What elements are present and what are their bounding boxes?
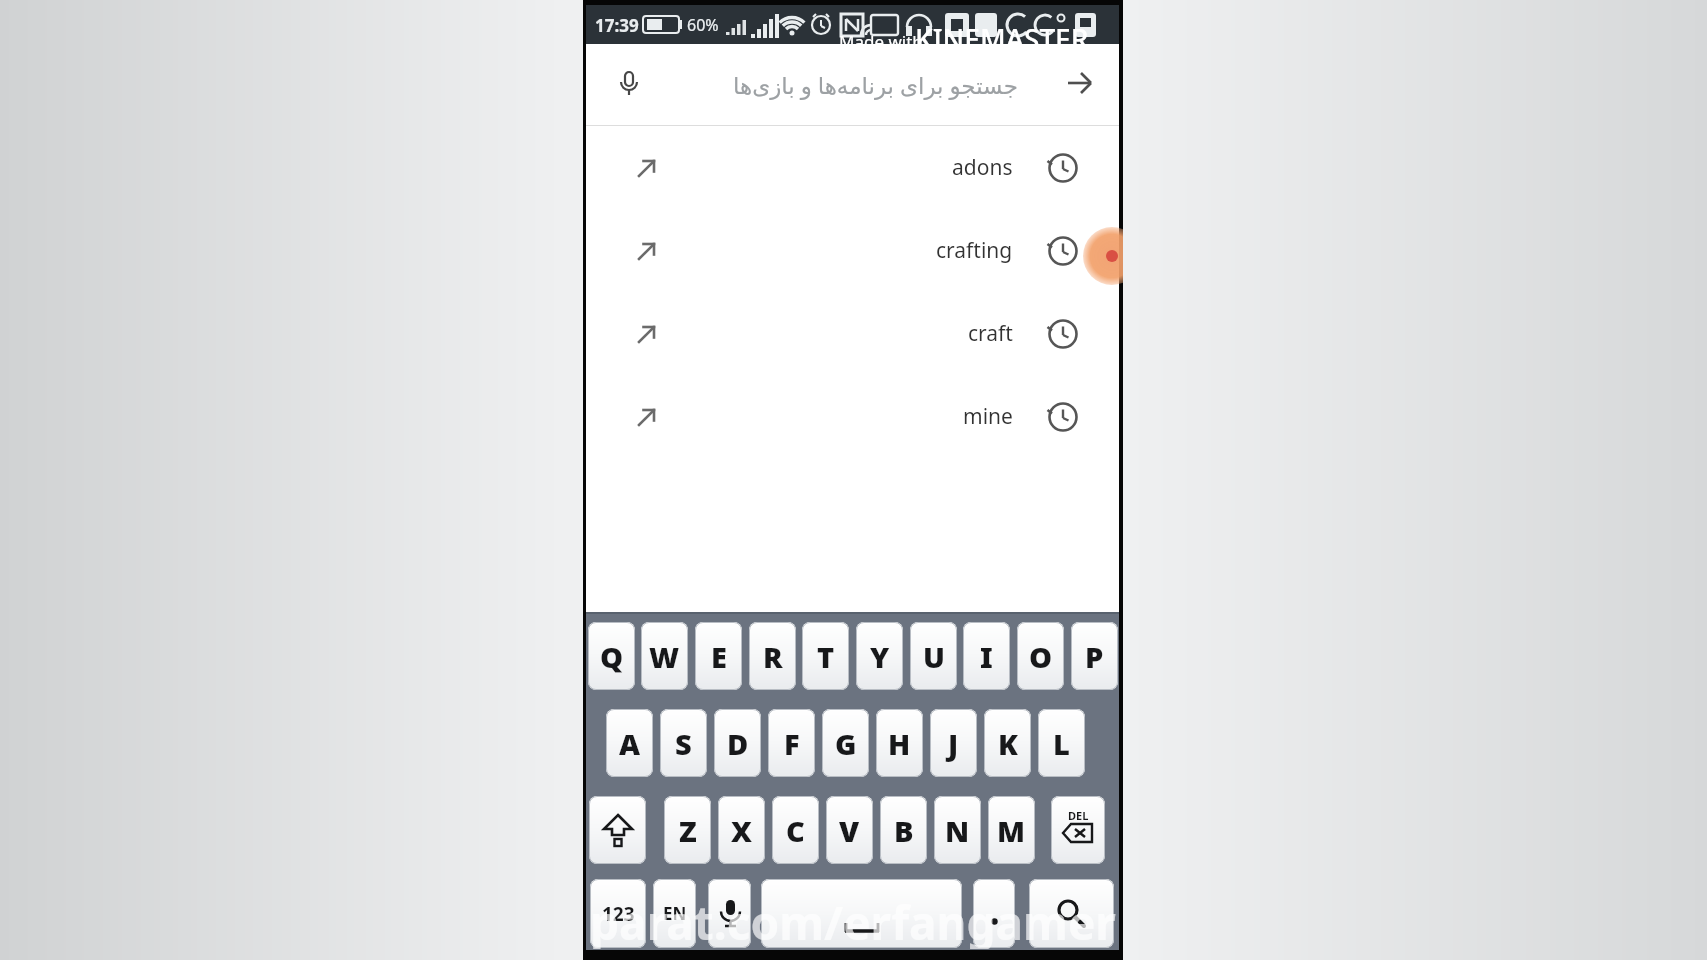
staticText: EN: [663, 902, 687, 925]
staticText: K: [998, 724, 1018, 763]
staticText: adons: [952, 153, 1013, 182]
button[interactable]: [1064, 68, 1096, 100]
button[interactable]: C: [772, 796, 819, 864]
button[interactable]: EN: [653, 879, 696, 948]
staticText: G: [835, 724, 857, 763]
button[interactable]: [1029, 879, 1114, 948]
button[interactable]: O: [1017, 622, 1064, 690]
staticText: I: [980, 637, 993, 676]
button[interactable]: 123: [590, 879, 646, 948]
staticText: O: [1029, 637, 1053, 676]
button[interactable]: [973, 879, 1015, 948]
staticText: Z: [679, 811, 697, 850]
button[interactable]: N: [934, 796, 981, 864]
staticText: M: [997, 811, 1026, 850]
staticText: Y: [870, 637, 890, 676]
button[interactable]: G: [822, 709, 869, 777]
staticText: W: [649, 637, 680, 676]
button[interactable]: U: [910, 622, 957, 690]
staticText: F: [784, 724, 800, 763]
button[interactable]: X: [718, 796, 765, 864]
staticText: L: [1053, 724, 1070, 763]
button[interactable]: [761, 879, 962, 948]
button[interactable]: E: [695, 622, 742, 690]
button[interactable]: [708, 879, 751, 948]
button[interactable]: D: [714, 709, 761, 777]
button[interactable]: P: [1071, 622, 1118, 690]
staticText: T: [817, 637, 835, 676]
button[interactable]: K: [984, 709, 1031, 777]
button[interactable]: mine: [586, 375, 1119, 458]
button[interactable]: [589, 796, 646, 864]
button[interactable]: DEL: [1051, 796, 1105, 864]
button[interactable]: R: [749, 622, 796, 690]
staticText: C: [786, 811, 805, 850]
staticText: S: [675, 724, 692, 763]
staticText: A: [619, 724, 641, 763]
staticText: B: [894, 811, 914, 850]
staticText: U: [923, 637, 945, 676]
button[interactable]: I: [963, 622, 1010, 690]
button[interactable]: adons: [586, 126, 1119, 209]
button[interactable]: J: [930, 709, 977, 777]
button[interactable]: L: [1038, 709, 1085, 777]
button[interactable]: F: [768, 709, 815, 777]
staticText: 123: [602, 901, 635, 927]
button[interactable]: W: [641, 622, 688, 690]
button[interactable]: جستجو برای برنامه‌ها و بازی‌ها: [586, 44, 1119, 125]
staticText: Q: [600, 637, 624, 676]
staticText: H: [888, 724, 911, 763]
button[interactable]: craft: [586, 292, 1119, 375]
button[interactable]: Q: [588, 622, 635, 690]
staticText: R: [763, 637, 783, 676]
button[interactable]: A: [606, 709, 653, 777]
staticText: E: [711, 637, 727, 676]
staticText: N: [945, 811, 970, 850]
staticText: 17:39: [595, 14, 639, 37]
button[interactable]: Y: [856, 622, 903, 690]
staticText: KINEMASTER: [915, 20, 1089, 58]
button[interactable]: T: [802, 622, 849, 690]
staticText: X: [731, 811, 752, 850]
staticText: D: [727, 724, 749, 763]
button[interactable]: S: [660, 709, 707, 777]
staticText: DEL: [1068, 808, 1089, 823]
staticText: parat.com/erfangamer: [590, 891, 1116, 949]
staticText: mine: [963, 402, 1013, 431]
staticText: craft: [968, 319, 1013, 348]
button[interactable]: crafting: [586, 209, 1119, 292]
staticText: 60%: [687, 14, 719, 36]
button[interactable]: V: [826, 796, 873, 864]
button[interactable]: B: [880, 796, 927, 864]
button[interactable]: M: [988, 796, 1035, 864]
button[interactable]: Z: [664, 796, 711, 864]
button[interactable]: H: [876, 709, 923, 777]
staticText: J: [948, 724, 959, 763]
staticText: crafting: [936, 236, 1013, 265]
staticText: P: [1085, 637, 1104, 676]
staticText: Made with: [839, 30, 923, 53]
staticText: V: [839, 811, 860, 850]
staticText: جستجو برای برنامه‌ها و بازی‌ها: [733, 69, 1018, 100]
